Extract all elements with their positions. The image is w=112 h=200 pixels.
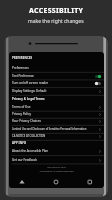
staticText: Your Privacy Choices <box>12 119 41 123</box>
staticText: PREFERENCES <box>12 56 33 60</box>
button[interactable]: About the Accessible Plan <box>9 148 104 154</box>
button[interactable]: Privacy Policy <box>9 111 104 117</box>
button[interactable]: Your Privacy Choices <box>9 118 104 124</box>
button[interactable]: Limited Use and Disclosure of Sensitive … <box>9 126 104 132</box>
button[interactable]: Turn on/off screen reader <box>9 80 104 86</box>
staticText: Turn on/off screen reader <box>12 81 49 85</box>
staticText: Preferences <box>12 66 29 70</box>
button[interactable]: CA NOTICE AT COLLECTION <box>9 133 104 139</box>
staticText: COPYRIGHT 2024 Accessibility All Rights … <box>9 166 104 172</box>
staticText: CA NOTICE AT COLLECTION <box>12 134 46 138</box>
staticText: Terms of Use <box>12 105 31 109</box>
staticText: About the Accessible Plan <box>12 149 49 153</box>
button[interactable]: Display Settings: Default <box>9 88 104 94</box>
staticText: Privacy Policy <box>12 112 31 116</box>
staticText: Text Preference <box>12 74 34 78</box>
staticText: Privacy & Legal Terms <box>12 97 45 101</box>
button[interactable]: Preferences <box>9 65 104 71</box>
staticText: Limited Use and Disclosure of Sensitive … <box>12 127 87 131</box>
button[interactable]: Terms of Use <box>9 104 104 110</box>
staticText: Get our Feedback <box>12 158 37 162</box>
staticText: make the right changes <box>28 18 84 25</box>
staticText: ACCESSIBILITY <box>29 6 84 16</box>
button[interactable]: Get our Feedback <box>9 157 104 163</box>
button[interactable]: Text Preference <box>9 73 104 79</box>
staticText: APP INFO <box>12 141 27 145</box>
staticText: Display Settings: Default <box>12 89 47 93</box>
